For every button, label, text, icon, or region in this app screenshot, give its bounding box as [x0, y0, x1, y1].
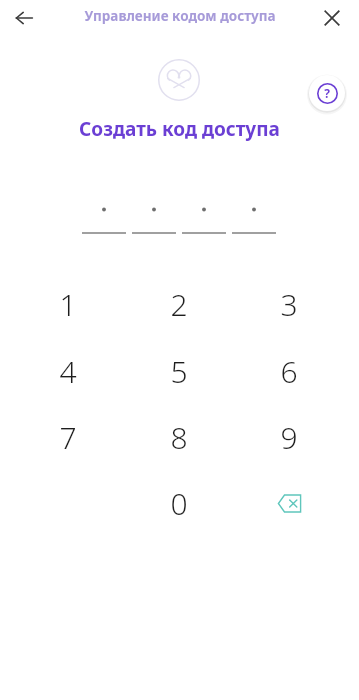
staticText: 2	[170, 284, 188, 325]
button[interactable]: Close	[316, 2, 348, 34]
button[interactable]: 6	[256, 343, 322, 399]
button[interactable]: Help	[310, 76, 344, 110]
staticText: 0	[170, 483, 188, 524]
button[interactable]: 7	[35, 409, 101, 465]
staticText: Создать код доступа	[0, 116, 359, 142]
button[interactable]: 1	[35, 276, 101, 332]
staticText: 1	[59, 284, 77, 325]
staticText: 9	[280, 417, 298, 458]
button[interactable]: 4	[35, 343, 101, 399]
button[interactable]: 5	[146, 343, 212, 399]
button[interactable]: Back	[8, 2, 40, 34]
button[interactable]: 8	[146, 409, 212, 465]
button[interactable]: 2	[146, 276, 212, 332]
button[interactable]: 3	[256, 276, 322, 332]
staticText: 4	[59, 351, 77, 392]
staticText: 6	[280, 351, 298, 392]
staticText: 8	[170, 417, 188, 458]
staticText: 3	[280, 284, 298, 325]
button[interactable]: Backspace	[256, 475, 322, 531]
staticText: ?	[324, 85, 330, 101]
staticText: 5	[170, 351, 188, 392]
button[interactable]: 9	[256, 409, 322, 465]
staticText: Управление кодом доступа	[84, 7, 276, 25]
button[interactable]: 0	[146, 475, 212, 531]
staticText: 7	[59, 417, 77, 458]
